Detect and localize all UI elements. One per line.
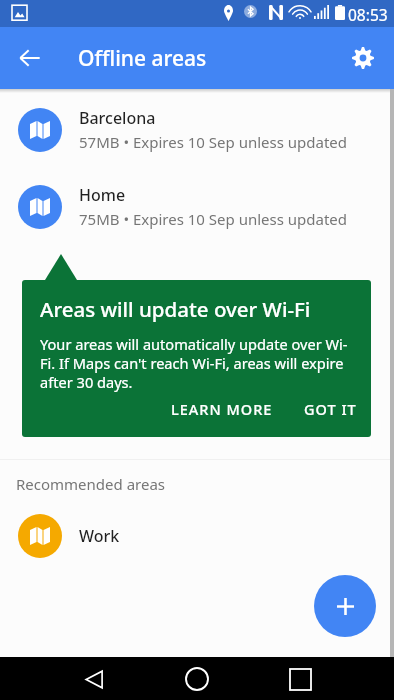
button[interactable]: Settings	[341, 36, 385, 80]
button[interactable]: Home	[0, 168, 394, 245]
button[interactable]: Back	[8, 36, 52, 80]
staticText: Your areas will automatically update ove…	[40, 334, 357, 392]
button[interactable]: GOT IT	[298, 394, 363, 424]
button[interactable]: Add offline area	[314, 575, 376, 637]
staticText: GOT IT	[304, 399, 357, 419]
staticText: Areas will update over Wi-Fi	[40, 295, 311, 323]
staticText: Home	[79, 184, 126, 206]
button[interactable]: Recents	[279, 658, 321, 700]
staticText: Work	[79, 525, 120, 547]
button[interactable]: Back	[73, 658, 115, 700]
button[interactable]: Home	[176, 658, 218, 700]
staticText: 08:53	[348, 4, 388, 25]
staticText: Barcelona	[79, 107, 156, 129]
staticText: 57MB • Expires 10 Sep unless updated	[79, 132, 348, 152]
staticText: LEARN MORE	[171, 399, 273, 419]
staticText: Recommended areas	[16, 474, 166, 494]
staticText: Offline areas	[78, 44, 207, 73]
button[interactable]: LEARN MORE	[165, 394, 279, 424]
button[interactable]: Work	[0, 506, 394, 566]
staticText: 75MB • Expires 10 Sep unless updated	[79, 209, 348, 229]
button[interactable]: Barcelona	[0, 91, 394, 168]
